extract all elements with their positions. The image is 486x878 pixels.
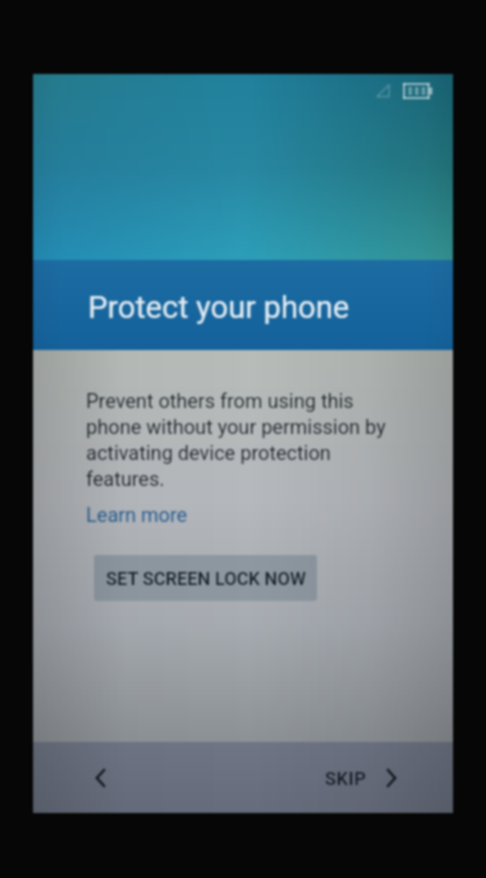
staticText: SET SCREEN LOCK NOW (106, 568, 306, 589)
button[interactable]: Back (83, 761, 117, 795)
staticText: Protect your phone (88, 289, 350, 325)
button[interactable]: Learn more (86, 503, 188, 526)
button[interactable]: SKIP (325, 767, 402, 789)
staticText: Learn more (86, 503, 188, 526)
staticText: Prevent others from using this phone wit… (86, 389, 404, 491)
staticText: SKIP (325, 768, 367, 789)
button[interactable]: SET SCREEN LOCK NOW (94, 555, 317, 601)
